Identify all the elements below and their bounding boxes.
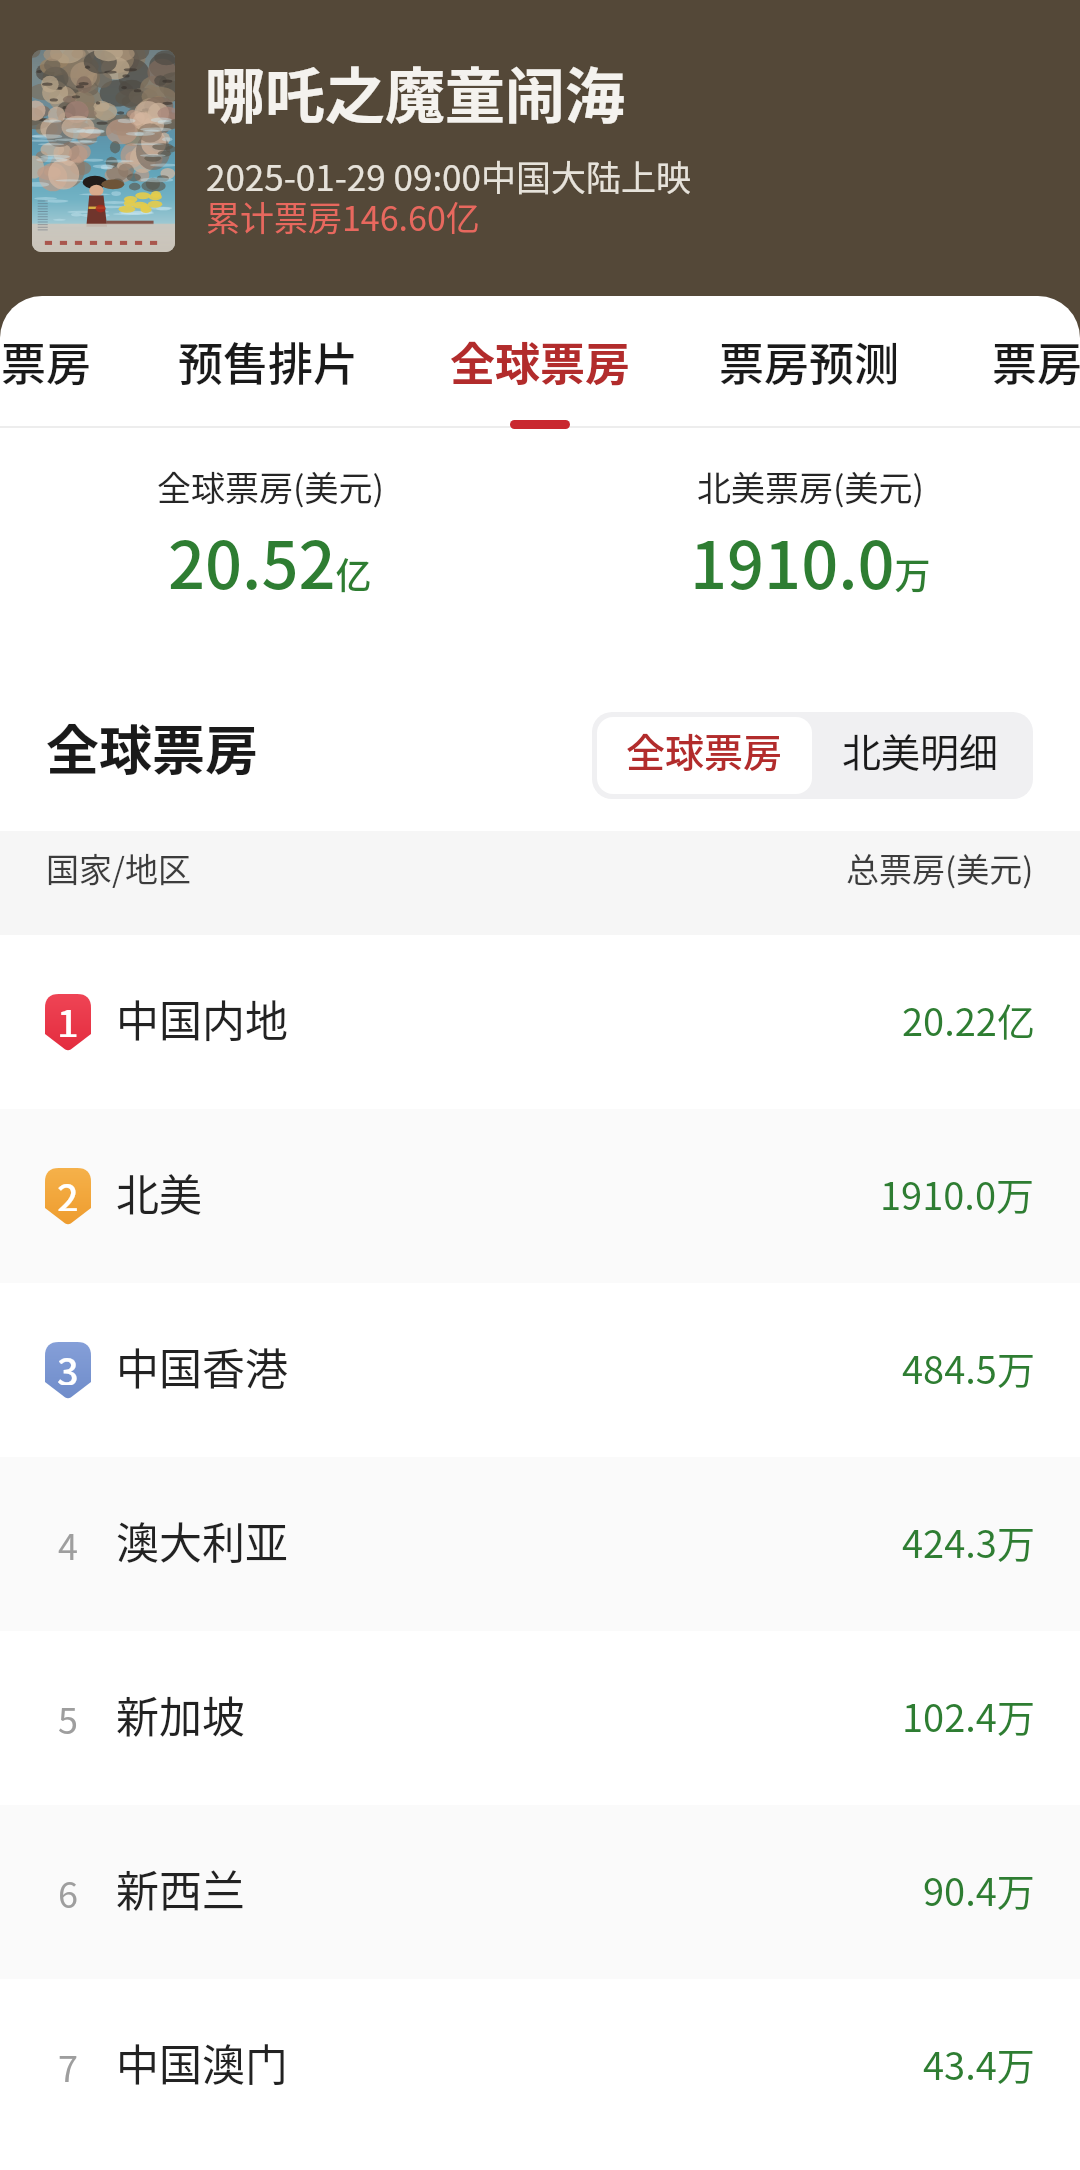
staticText: 全球票房 [626, 722, 783, 778]
staticText: 北美 [116, 1161, 202, 1223]
button[interactable]: 票房 [925, 296, 1080, 427]
staticText: 北美明细 [842, 722, 999, 778]
staticText: 预售排片 [178, 329, 359, 394]
button[interactable]: 6 [0, 1805, 1080, 1979]
button[interactable]: 4 [0, 1457, 1080, 1631]
staticText: 全球票房 [46, 709, 258, 786]
button[interactable]: 票房预测 [675, 296, 925, 427]
staticText: 20.22亿 [902, 992, 1035, 1047]
staticText: 2025-01-29 09:00中国大陆上映 [206, 150, 691, 201]
staticText: 1 [57, 994, 79, 1037]
staticText: 90.4万 [923, 1862, 1035, 1917]
staticText: 中国内地 [116, 987, 288, 1049]
staticText: 2 [57, 1168, 79, 1211]
staticText: 全球票房 [450, 329, 631, 394]
staticText: 票房 [992, 329, 1080, 394]
staticText: 424.3万 [902, 1514, 1035, 1569]
staticText: 484.5万 [902, 1340, 1035, 1395]
staticText: 累计票房146.60亿 [206, 192, 480, 241]
button[interactable]: 3 [0, 1283, 1080, 1457]
staticText: 6 [58, 1866, 78, 1918]
staticText: 国家/地区 [46, 844, 191, 892]
staticText: 4 [58, 1518, 78, 1570]
staticText: 新西兰 [116, 1857, 245, 1919]
staticText: 中国香港 [116, 1335, 288, 1397]
staticText: 全球票房(美元) [157, 462, 384, 511]
staticText: 3 [57, 1342, 79, 1385]
staticText: 票房 [1, 329, 92, 394]
button[interactable]: 全球票房 [404, 296, 675, 427]
staticText: 5 [58, 1692, 78, 1744]
staticText: 北美票房(美元) [697, 462, 924, 511]
staticText: 1910.0万 [690, 514, 931, 608]
button[interactable]: 北美明细 [812, 717, 1028, 794]
button[interactable]: 5 [0, 1631, 1080, 1805]
staticText: 1910.0万 [880, 1166, 1035, 1221]
staticText: 7 [58, 2040, 78, 2092]
button[interactable]: 预售排片 [160, 296, 404, 427]
button[interactable]: 票房 [0, 296, 160, 427]
staticText: 票房预测 [719, 329, 900, 394]
button[interactable]: 1 [0, 935, 1080, 1109]
button[interactable]: 全球票房 [597, 717, 812, 794]
staticText: 102.4万 [902, 1688, 1035, 1743]
staticText: 新加坡 [116, 1683, 245, 1745]
staticText: 20.52亿 [168, 514, 372, 608]
other: 哪吒之魔童闹海 poster [32, 50, 175, 252]
staticText: 澳大利亚 [116, 1509, 288, 1571]
staticText: 总票房(美元) [846, 844, 1034, 892]
button[interactable]: 7 [0, 1979, 1080, 2153]
staticText: 哪吒之魔童闹海 [205, 48, 625, 135]
button[interactable]: 2 [0, 1109, 1080, 1283]
staticText: 43.4万 [923, 2036, 1035, 2091]
button[interactable]: 哪吒之魔童闹海 poster [0, 0, 1080, 296]
staticText: 中国澳门 [116, 2031, 288, 2093]
